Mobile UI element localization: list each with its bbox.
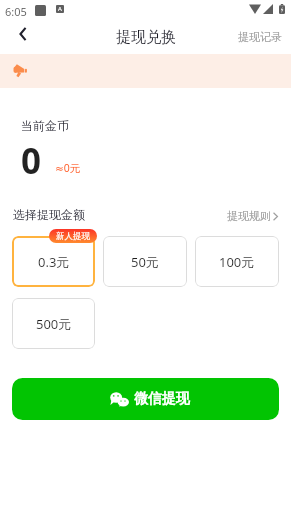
button[interactable]: 0.3元: [12, 236, 95, 287]
staticText: 0.3元: [38, 253, 70, 271]
staticText: 0: [21, 137, 42, 185]
staticText: 50元: [131, 253, 159, 271]
button[interactable]: Back: [9, 20, 37, 48]
staticText: 当前金币: [21, 118, 69, 133]
button[interactable]: 100元: [195, 236, 279, 287]
staticText: 选择提现金额: [13, 207, 85, 222]
button[interactable]: 提现记录: [229, 24, 291, 50]
staticText: 提现规则: [227, 209, 271, 223]
staticText: 6:05: [5, 4, 27, 19]
staticText: 新人提现: [56, 231, 90, 242]
staticText: 100元: [219, 253, 255, 271]
staticText: A: [58, 5, 62, 13]
button[interactable]: 提现规则: [223, 205, 283, 227]
staticText: ≈0元: [55, 161, 81, 175]
staticText: 微信提现: [134, 390, 190, 408]
button[interactable]: 50元: [103, 236, 187, 287]
button[interactable]: [0, 54, 291, 88]
button[interactable]: 微信提现: [12, 378, 279, 420]
staticText: 500元: [36, 315, 72, 333]
button[interactable]: 500元: [12, 298, 95, 349]
staticText: 提现兑换: [116, 28, 176, 47]
